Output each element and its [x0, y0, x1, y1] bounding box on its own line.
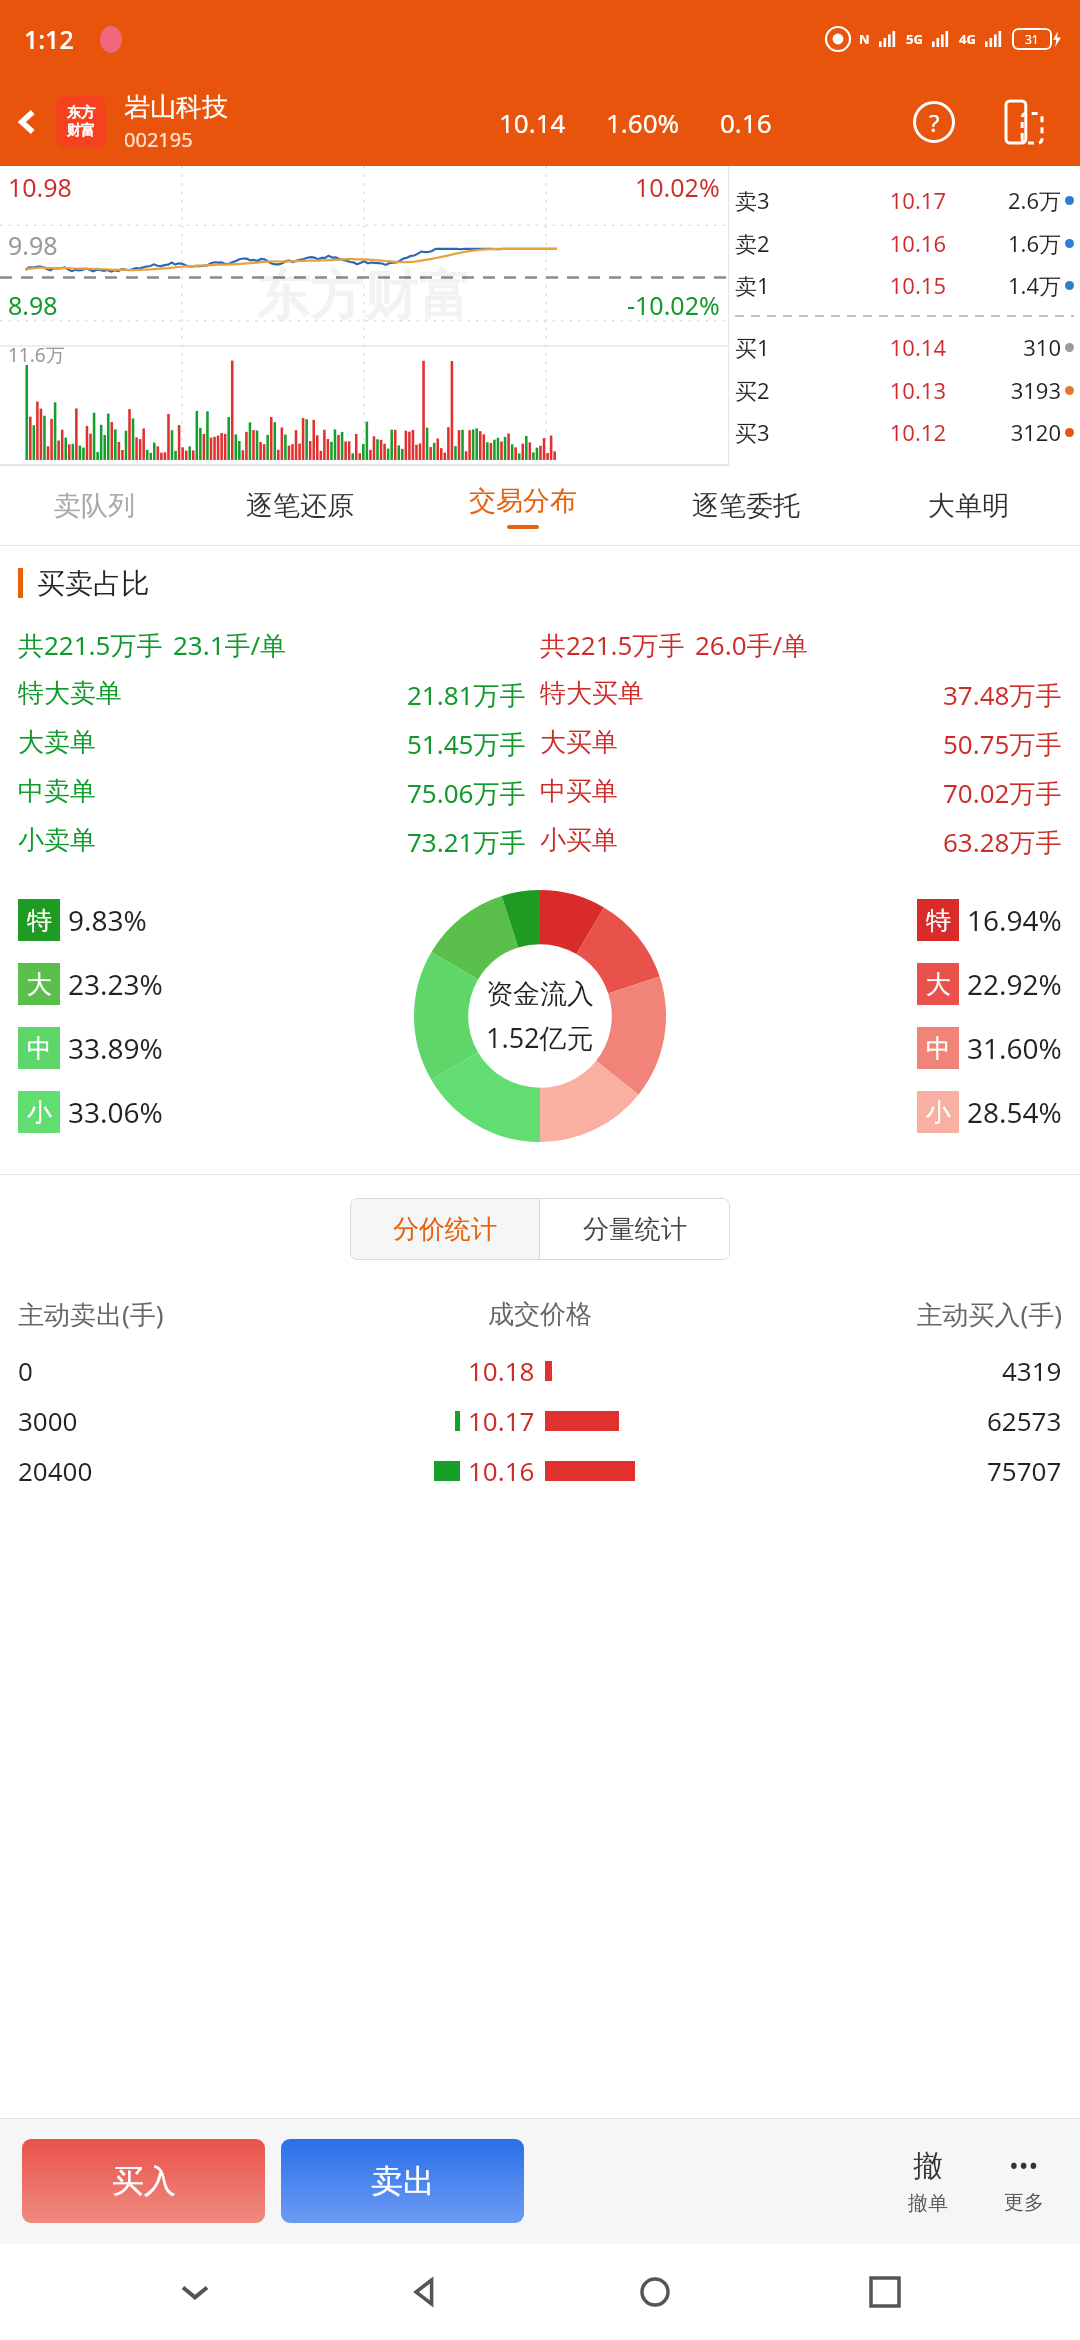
button[interactable]: Recent apps: [850, 2257, 920, 2327]
button[interactable]: Home: [620, 2257, 690, 2327]
staticText: 16.94%: [967, 901, 1062, 939]
staticText: 卖出: [371, 2161, 435, 2201]
staticText: 主动买入(手): [714, 1296, 1062, 1332]
button[interactable]: 小: [917, 1091, 1062, 1133]
staticText: 75.06万手: [407, 775, 526, 811]
button[interactable]: Back: [0, 94, 56, 150]
staticText: 1.60%: [606, 105, 680, 140]
staticText: 3000: [18, 1403, 78, 1438]
staticText: 23.1手/单: [173, 627, 287, 663]
staticText: 特: [27, 905, 52, 936]
staticText: 0: [18, 1353, 33, 1388]
staticText: -10.02%: [627, 288, 720, 322]
staticText: •••: [1009, 2147, 1039, 2182]
staticText: 10.15: [821, 270, 946, 300]
button[interactable]: 大单明: [857, 466, 1080, 546]
button[interactable]: Help: [908, 96, 960, 148]
button[interactable]: 卖3: [735, 185, 1074, 215]
button[interactable]: 大: [18, 963, 163, 1005]
button[interactable]: 20400: [18, 1445, 1062, 1495]
staticText: 1.6万: [946, 228, 1061, 258]
staticText: 撤单: [908, 2191, 948, 2216]
staticText: 62573: [987, 1403, 1062, 1438]
staticText: 11.6万: [8, 342, 65, 368]
button[interactable]: 东方: [56, 96, 106, 148]
button[interactable]: 卖1: [735, 270, 1074, 300]
staticText: 37.48万手: [943, 677, 1062, 713]
staticText: 10.12: [821, 417, 946, 447]
staticText: 小卖单: [18, 824, 96, 857]
staticText: 33.89%: [68, 1029, 163, 1067]
staticText: 特大卖单: [18, 677, 122, 710]
staticText: 10.13: [821, 375, 946, 405]
staticText: 资金流入: [486, 977, 594, 1011]
staticText: 70.02万手: [943, 775, 1062, 811]
button[interactable]: Back: [390, 2257, 460, 2327]
staticText: 1.4万: [946, 270, 1061, 300]
staticText: 小: [27, 1097, 52, 1128]
staticText: 75707: [987, 1453, 1062, 1488]
button[interactable]: 卖队列: [0, 466, 188, 546]
staticText: 8.98: [8, 288, 58, 322]
button[interactable]: 撤: [880, 2118, 976, 2244]
staticText: 4G: [959, 30, 976, 48]
staticText: 310: [946, 332, 1061, 362]
button[interactable]: •••: [976, 2118, 1072, 2244]
staticText: 更多: [1004, 2190, 1044, 2215]
staticText: 23.23%: [68, 965, 163, 1003]
staticText: 31.60%: [967, 1029, 1062, 1067]
button[interactable]: 特: [917, 899, 1062, 941]
button[interactable]: 买2: [735, 375, 1074, 405]
button[interactable]: 大: [917, 963, 1062, 1005]
staticText: 9.83%: [68, 901, 147, 939]
button[interactable]: 逐笔委托: [634, 466, 857, 546]
button[interactable]: 中: [917, 1027, 1062, 1069]
staticText: 4319: [1002, 1353, 1062, 1388]
staticText: 10.18: [468, 1353, 535, 1388]
staticText: 分量统计: [583, 1213, 687, 1246]
staticText: 共221.5万手: [540, 627, 685, 663]
button[interactable]: Screenshot: [998, 96, 1050, 148]
button[interactable]: 分量统计: [540, 1198, 730, 1260]
staticText: 成交价格: [366, 1298, 714, 1331]
button[interactable]: 逐笔还原: [188, 466, 411, 546]
button[interactable]: 卖出: [281, 2139, 524, 2223]
staticText: 买1: [735, 332, 821, 362]
button[interactable]: 特: [18, 899, 147, 941]
staticText: 10.14: [499, 105, 566, 140]
staticText: 大: [27, 969, 52, 1000]
staticText: 撤: [913, 2147, 943, 2185]
staticText: 73.21万手: [407, 824, 526, 860]
staticText: 小: [926, 1097, 951, 1128]
staticText: 10.98: [8, 170, 72, 204]
staticText: 002195: [124, 126, 193, 153]
staticText: N: [859, 30, 870, 48]
staticText: 买入: [112, 2161, 176, 2201]
staticText: 51.45万手: [407, 726, 526, 762]
staticText: 1.52亿元: [486, 1019, 594, 1056]
staticText: 22.92%: [967, 965, 1062, 1003]
staticText: 20400: [18, 1453, 93, 1488]
staticText: 买2: [735, 375, 821, 405]
staticText: 大买单: [540, 726, 618, 759]
button[interactable]: 0: [18, 1345, 1062, 1395]
button[interactable]: 买1: [735, 332, 1074, 362]
button[interactable]: 买入: [22, 2139, 265, 2223]
staticText: 卖队列: [54, 489, 135, 523]
button[interactable]: 卖2: [735, 228, 1074, 258]
staticText: 大单明: [928, 489, 1009, 523]
staticText: 33.06%: [68, 1093, 163, 1131]
button[interactable]: Hide keyboard: [160, 2257, 230, 2327]
button[interactable]: 分价统计: [350, 1198, 539, 1260]
button[interactable]: 3000: [18, 1395, 1062, 1445]
staticText: 卖1: [735, 270, 821, 300]
button[interactable]: 买3: [735, 417, 1074, 447]
button[interactable]: 中: [18, 1027, 163, 1069]
button[interactable]: 小: [18, 1091, 163, 1133]
staticText: 分价统计: [393, 1213, 497, 1246]
button[interactable]: 交易分布: [411, 466, 634, 546]
staticText: 大: [926, 969, 951, 1000]
staticText: 岩山科技: [124, 91, 228, 124]
staticText: 财富: [67, 122, 95, 140]
staticText: 10.02%: [635, 170, 720, 204]
